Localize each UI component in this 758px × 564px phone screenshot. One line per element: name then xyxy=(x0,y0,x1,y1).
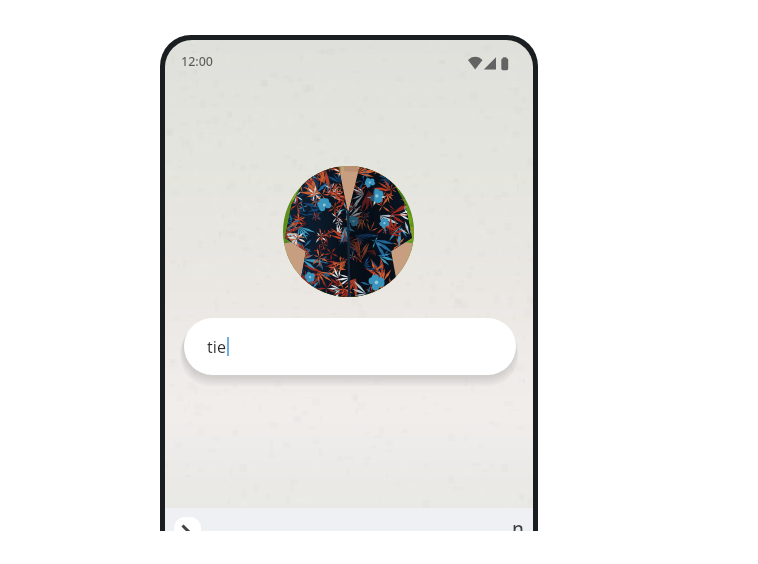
button[interactable]: Voice input xyxy=(174,517,201,531)
button[interactable]: Profile photo xyxy=(283,166,414,297)
staticText: tie xyxy=(207,336,226,358)
staticText: n xyxy=(512,516,524,531)
button[interactable]: tie xyxy=(184,318,516,375)
staticText: 12:00 xyxy=(181,53,214,70)
